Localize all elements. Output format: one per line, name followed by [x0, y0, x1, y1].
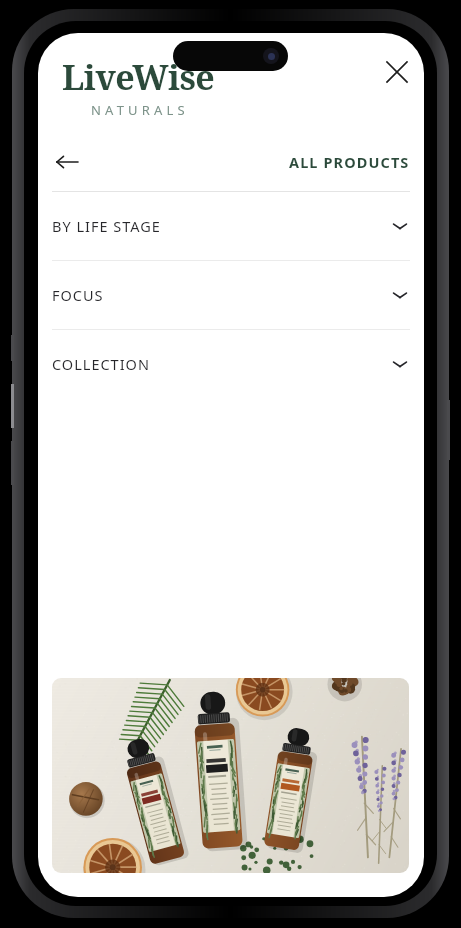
staticText: ALL PRODUCTS [289, 152, 410, 172]
button[interactable]: COLLECTION [38, 330, 424, 398]
button[interactable]: Back [44, 139, 90, 185]
button[interactable]: BY LIFE STAGE [38, 192, 424, 260]
button[interactable]: Product photo [52, 678, 409, 873]
staticText: FOCUS [52, 285, 392, 305]
button[interactable]: FOCUS [38, 261, 424, 329]
button[interactable]: ALL PRODUCTS [283, 144, 416, 180]
staticText: COLLECTION [52, 354, 392, 374]
button[interactable]: Close [375, 50, 419, 94]
staticText: LiveWise [62, 54, 215, 100]
staticText: BY LIFE STAGE [52, 216, 392, 236]
staticText: NATURALS [91, 101, 189, 119]
